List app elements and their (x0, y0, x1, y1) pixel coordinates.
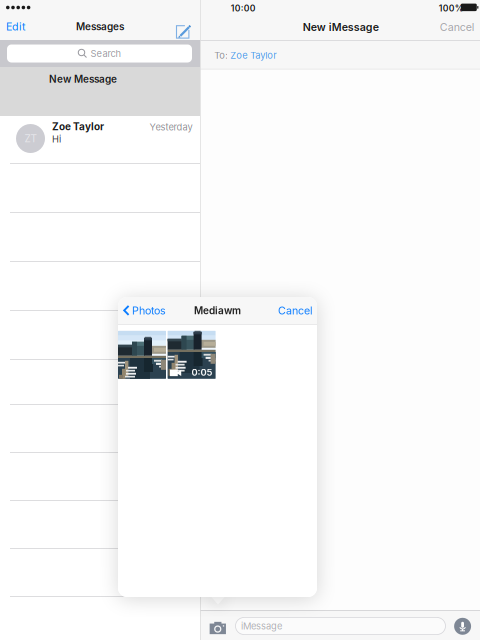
button[interactable]: New Message (0, 67, 200, 116)
button[interactable]: Zoe Taylor (201, 41, 271, 69)
staticText: Search (90, 48, 121, 59)
button[interactable]: Cancel (118, 297, 173, 324)
staticText: Cancel (440, 20, 475, 33)
staticText: New iMessage (303, 20, 379, 33)
button[interactable]: Video, 5 seconds (168, 331, 216, 379)
staticText: Zoe Taylor (52, 120, 104, 133)
button[interactable]: Search (0, 40, 185, 58)
button[interactable]: Compose (0, 13, 22, 40)
staticText: Edit (6, 20, 25, 33)
staticText: Zoe Taylor (230, 50, 277, 61)
staticText: Yesterday (149, 121, 192, 133)
staticText: 100% (439, 3, 464, 13)
button[interactable]: Photo (118, 331, 166, 379)
button[interactable]: Camera (201, 611, 223, 633)
staticText: iMessage (241, 620, 282, 632)
button[interactable]: Edit (0, 13, 36, 40)
button[interactable]: ZT (0, 116, 200, 163)
button[interactable]: iMessage text field (201, 611, 411, 628)
staticText: ZT (24, 132, 36, 145)
button[interactable]: Record audio (201, 611, 223, 633)
staticText: Messages (76, 20, 124, 33)
staticText: To: (214, 50, 228, 61)
staticText: Cancel (278, 304, 313, 317)
staticText: New Message (49, 73, 117, 85)
staticText: Photos (132, 304, 166, 317)
button[interactable]: Photos (118, 297, 161, 324)
staticText: Hi (52, 133, 61, 145)
staticText: 0:05 (192, 367, 213, 378)
staticText: Mediawm (194, 304, 241, 317)
staticText: 10:00 (231, 3, 256, 13)
